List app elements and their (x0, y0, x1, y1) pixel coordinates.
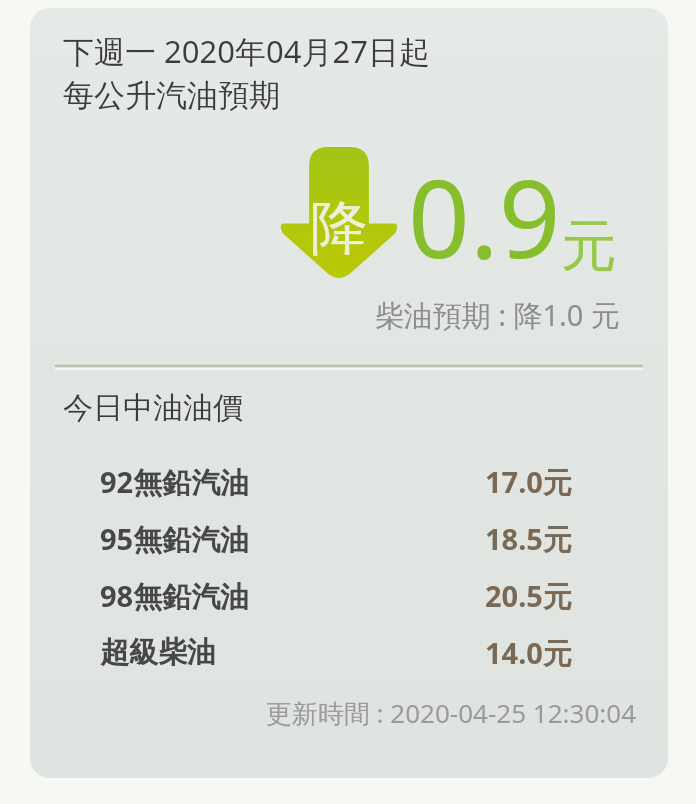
staticText: 今日中油油價 (63, 389, 243, 427)
staticText: 每公升汽油預期 (63, 76, 280, 115)
staticText: 下週一 2020年04月27日起 (63, 30, 430, 72)
staticText: 0.9 (408, 143, 561, 290)
button[interactable]: 超級柴油 (30, 624, 668, 681)
staticText: 92無鉛汽油 (100, 462, 250, 502)
staticText: 元 (561, 211, 617, 282)
button[interactable]: 92無鉛汽油 (30, 453, 668, 510)
button[interactable]: 下週一 2020年04月27日起 (30, 8, 668, 778)
staticText: 柴油預期 : 降1.0 元 (30, 295, 620, 335)
button[interactable]: 95無鉛汽油 (30, 510, 668, 567)
staticText: 95無鉛汽油 (100, 519, 250, 559)
staticText: 14.0元 (485, 633, 572, 673)
button[interactable]: 汽油價格下降 (278, 147, 400, 285)
staticText: 18.5元 (485, 519, 572, 559)
staticText: 超級柴油 (100, 634, 216, 671)
staticText: 降 (310, 192, 368, 265)
staticText: 17.0元 (485, 462, 572, 502)
staticText: 20.5元 (485, 576, 572, 616)
button[interactable]: 98無鉛汽油 (30, 567, 668, 624)
staticText: 98無鉛汽油 (100, 576, 250, 616)
staticText: 更新時間 : 2020-04-25 12:30:04 (30, 695, 636, 731)
